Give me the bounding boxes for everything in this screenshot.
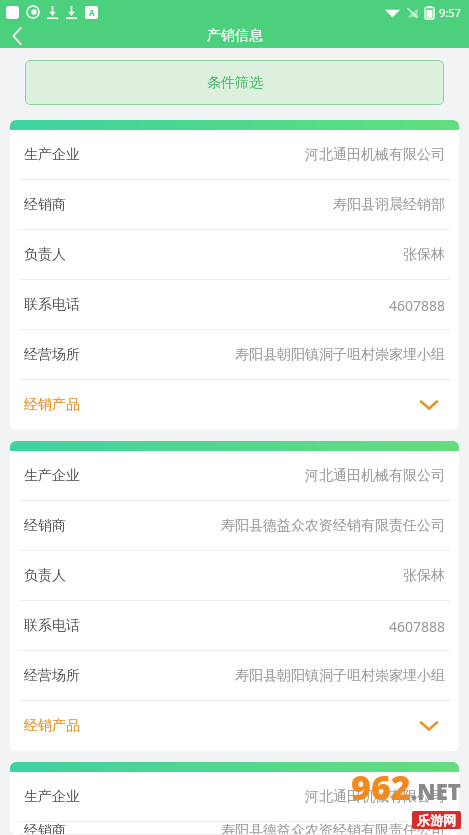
staticText: 经销产品: [24, 396, 80, 414]
staticText: 寿阳县朝阳镇洞子咀村崇家埋小组: [235, 346, 445, 364]
staticText: 经营场所: [24, 667, 80, 685]
staticText: 4607888: [388, 617, 445, 636]
staticText: 河北通田机械有限公司: [305, 146, 445, 164]
staticText: A: [89, 7, 95, 18]
staticText: 经销商: [24, 822, 66, 835]
staticText: 河北通田机械有限公司: [305, 788, 445, 806]
staticText: 经销商: [24, 517, 66, 535]
staticText: 寿阳县德益众农资经销有限责任公司: [221, 822, 445, 835]
staticText: 产销信息: [207, 27, 263, 45]
button[interactable]: Back: [0, 24, 34, 48]
staticText: 生产企业: [24, 788, 80, 806]
staticText: .NET: [411, 776, 461, 806]
staticText: 河北通田机械有限公司: [305, 467, 445, 485]
staticText: 乐游网: [417, 812, 456, 828]
staticText: 联系电话: [24, 617, 80, 635]
staticText: 9:57: [439, 5, 461, 20]
staticText: 经销产品: [24, 717, 80, 735]
staticText: 962: [351, 764, 411, 810]
staticText: 负责人: [24, 246, 66, 264]
staticText: 寿阳县诩晨经销部: [333, 196, 445, 214]
staticText: 条件筛选: [207, 74, 263, 92]
staticText: 联系电话: [24, 296, 80, 314]
button[interactable]: 条件筛选: [25, 60, 444, 105]
button[interactable]: 经销产品: [10, 380, 459, 430]
staticText: 负责人: [24, 567, 66, 585]
staticText: 生产企业: [24, 467, 80, 485]
staticText: 张保林: [403, 246, 445, 264]
staticText: 寿阳县德益众农资经销有限责任公司: [221, 517, 445, 535]
staticText: 经营场所: [24, 346, 80, 364]
staticText: 张保林: [403, 567, 445, 585]
button[interactable]: 经销产品: [10, 701, 459, 751]
staticText: 生产企业: [24, 146, 80, 164]
staticText: 4607888: [388, 296, 445, 315]
staticText: 经销商: [24, 196, 66, 214]
staticText: 寿阳县朝阳镇洞子咀村崇家埋小组: [235, 667, 445, 685]
